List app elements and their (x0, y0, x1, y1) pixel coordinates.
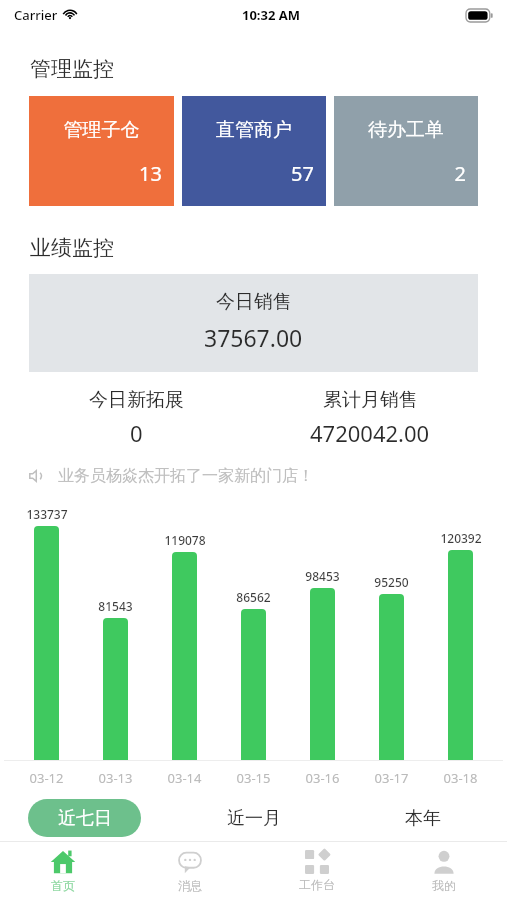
staticText: 57 (194, 160, 314, 187)
staticText: 119078 (164, 532, 206, 548)
staticText: 近一月 (227, 807, 281, 830)
button[interactable]: 近七日 (28, 799, 141, 837)
button[interactable]: 直管商户 (182, 96, 326, 206)
staticText: 03-17 (357, 769, 426, 787)
staticText: 今日新拓展 (89, 388, 184, 412)
staticText: 03-18 (426, 769, 495, 787)
button[interactable]: 工作台 (253, 844, 380, 898)
staticText: 首页 (51, 878, 75, 893)
button[interactable]: 近一月 (169, 799, 338, 837)
staticText: 消息 (178, 878, 202, 893)
button[interactable]: 消息 (126, 843, 253, 899)
staticText: 03-12 (12, 769, 81, 787)
staticText: 03-16 (288, 769, 357, 787)
staticText: 管理监控 (30, 56, 114, 82)
staticText: 我的 (432, 878, 456, 893)
button[interactable]: 首页 (0, 843, 126, 899)
button[interactable]: 本年 (338, 799, 507, 837)
button[interactable]: 我的 (380, 843, 507, 899)
staticText: 03-13 (81, 769, 150, 787)
staticText: 95250 (374, 574, 409, 590)
staticText: 今日销售 (216, 290, 292, 314)
button[interactable]: 今日销售 (29, 274, 478, 372)
staticText: 03-14 (150, 769, 219, 787)
staticText: 4720042.00 (310, 418, 430, 448)
staticText: 03-15 (219, 769, 288, 787)
staticText: 累计月销售 (323, 388, 418, 412)
staticText: 近七日 (58, 807, 112, 830)
staticText: 直管商户 (194, 118, 314, 142)
staticText: 业务员杨焱杰开拓了一家新的门店！ (58, 466, 314, 486)
staticText: 管理子仓 (41, 118, 162, 142)
staticText: 81543 (98, 598, 133, 614)
staticText: 86562 (236, 589, 271, 605)
staticText: Carrier (14, 6, 58, 24)
staticText: 98453 (305, 568, 340, 584)
staticText: 10:32 AM (242, 6, 301, 24)
button[interactable]: 待办工单 (334, 96, 478, 206)
staticText: 本年 (405, 807, 441, 830)
staticText: 37567.00 (204, 322, 303, 353)
staticText: 2 (346, 160, 466, 187)
button[interactable]: 管理子仓 (29, 96, 174, 206)
staticText: 133737 (26, 506, 68, 522)
staticText: 业绩监控 (30, 235, 114, 261)
staticText: 0 (130, 418, 143, 448)
staticText: 13 (41, 160, 162, 187)
staticText: 120392 (440, 530, 482, 546)
staticText: 待办工单 (346, 118, 466, 142)
staticText: 工作台 (299, 877, 335, 892)
